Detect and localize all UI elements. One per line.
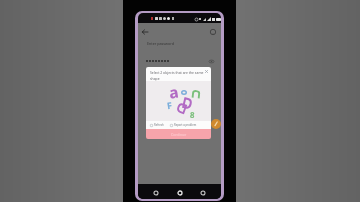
- button[interactable]: Continue: [146, 129, 211, 139]
- button[interactable]: Back: [151, 188, 161, 198]
- button[interactable]: Home: [175, 188, 185, 198]
- staticText: Refresh: [154, 123, 164, 127]
- staticText: Enter password: [147, 41, 174, 46]
- button[interactable]: Refresh: [149, 122, 165, 128]
- button[interactable]: Help: [208, 27, 217, 36]
- button[interactable]: Back: [140, 27, 149, 36]
- button[interactable]: Close: [203, 68, 210, 75]
- button[interactable]: Recent apps: [198, 188, 208, 198]
- button[interactable]: Report a problem: [169, 122, 198, 128]
- staticText: Report a problem: [174, 123, 197, 127]
- staticText: F: [166, 99, 173, 111]
- staticText: Select 2 objects that are the same shape: [150, 70, 206, 81]
- staticText: 8: [190, 109, 195, 120]
- staticText: Continue: [171, 132, 187, 137]
- button[interactable]: Show password: [207, 57, 215, 65]
- staticText: a: [167, 80, 181, 103]
